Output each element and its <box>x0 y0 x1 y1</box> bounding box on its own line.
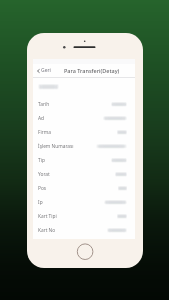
staticText: Kart Tipi <box>38 213 57 220</box>
button[interactable]: Ad <box>33 111 135 125</box>
button[interactable]: Ip <box>33 195 135 209</box>
button[interactable]: Kart Tipi <box>33 209 135 223</box>
staticText: Ip <box>38 199 43 206</box>
staticText: Pos <box>38 185 47 192</box>
staticText: Geri <box>41 67 51 74</box>
button[interactable]: Yorat <box>33 167 135 181</box>
staticText: Ad <box>38 115 45 122</box>
button[interactable]: Tarih <box>33 97 135 111</box>
button[interactable]: Geri <box>33 65 54 76</box>
button[interactable]: Kart No <box>33 223 135 237</box>
staticText: Firma <box>38 129 51 136</box>
button[interactable]: Tip <box>33 153 135 167</box>
staticText: Yorat <box>38 171 50 178</box>
button[interactable]: İşlem Numarası <box>33 139 135 153</box>
staticText: Para Transferi(Detay) <box>64 67 120 74</box>
button[interactable]: Pos <box>33 181 135 195</box>
staticText: İşlem Numarası <box>38 143 74 150</box>
staticText: Tarih <box>38 101 50 108</box>
staticText: Tip <box>38 157 45 164</box>
staticText: Kart No <box>38 227 56 234</box>
button[interactable]: Firma <box>33 125 135 139</box>
